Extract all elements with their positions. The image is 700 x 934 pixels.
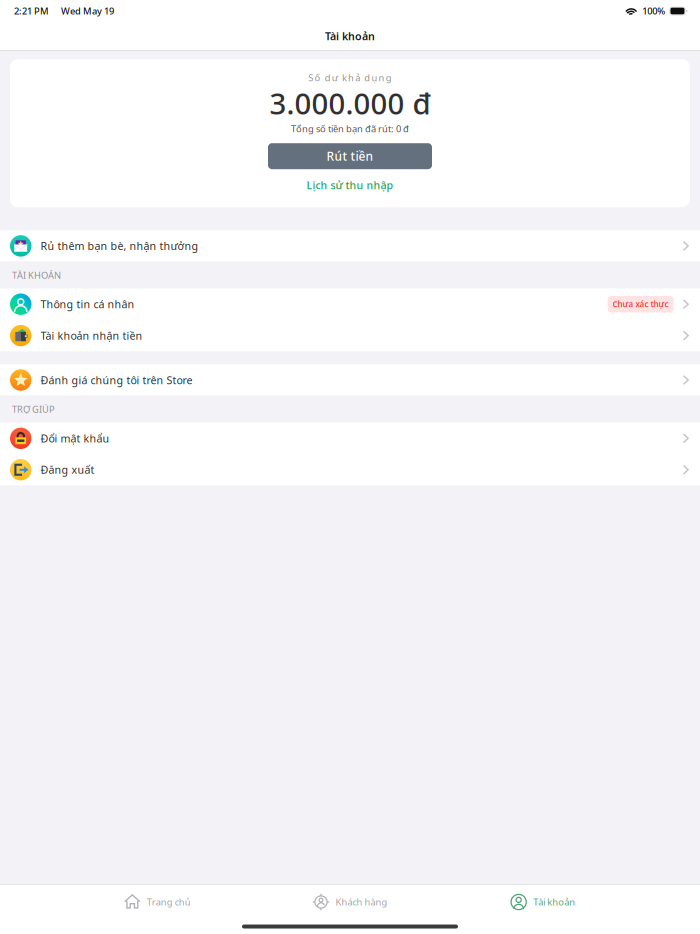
staticText: Đăng xuất xyxy=(40,463,94,477)
staticText: 3.000.000 đ xyxy=(269,84,430,123)
button[interactable]: Lịch sử thu nhập xyxy=(296,173,403,197)
staticText: TÀI KHOẢN xyxy=(12,269,61,281)
staticText: Chưa xác thực xyxy=(613,299,669,309)
staticText: 100% xyxy=(642,5,665,17)
staticText: Tài khoản xyxy=(533,896,575,908)
button[interactable]: Thông tin cá nhân xyxy=(0,288,700,320)
staticText: Lịch sử thu nhập xyxy=(306,178,393,192)
staticText: Wed May 19 xyxy=(61,5,114,17)
button[interactable]: Tài khoản nhận tiền xyxy=(0,320,700,351)
button[interactable]: Rút tiền xyxy=(268,143,432,169)
staticText: Số dư khả dụng xyxy=(308,71,392,84)
staticText: Rủ thêm bạn bè, nhận thưởng xyxy=(40,239,198,253)
staticText: Đánh giá chúng tôi trên Store xyxy=(40,373,192,387)
staticText: Rút tiền xyxy=(326,148,373,164)
staticText: Tổng số tiền bạn đã rút: 0 đ xyxy=(291,122,409,135)
staticText: Trang chủ xyxy=(147,896,191,908)
staticText: Thông tin cá nhân xyxy=(40,297,134,311)
button[interactable]: Đánh giá chúng tôi trên Store xyxy=(0,364,700,396)
button[interactable]: Rủ thêm bạn bè, nhận thưởng xyxy=(0,230,700,262)
staticText: Tài khoản nhận tiền xyxy=(40,328,142,343)
button[interactable]: Tài khoản xyxy=(446,885,639,919)
button[interactable]: Đổi mật khẩu xyxy=(0,423,700,454)
staticText: Đổi mật khẩu xyxy=(40,431,109,445)
staticText: TRỢ GIÚP xyxy=(12,403,55,415)
button[interactable]: Khách hàng xyxy=(254,885,446,919)
staticText: Tài khoản xyxy=(325,29,375,43)
button[interactable]: Trang chủ xyxy=(61,885,254,919)
staticText: Khách hàng xyxy=(335,896,387,908)
staticText: 2:21 PM xyxy=(14,5,49,17)
button[interactable]: Đăng xuất xyxy=(0,454,700,485)
